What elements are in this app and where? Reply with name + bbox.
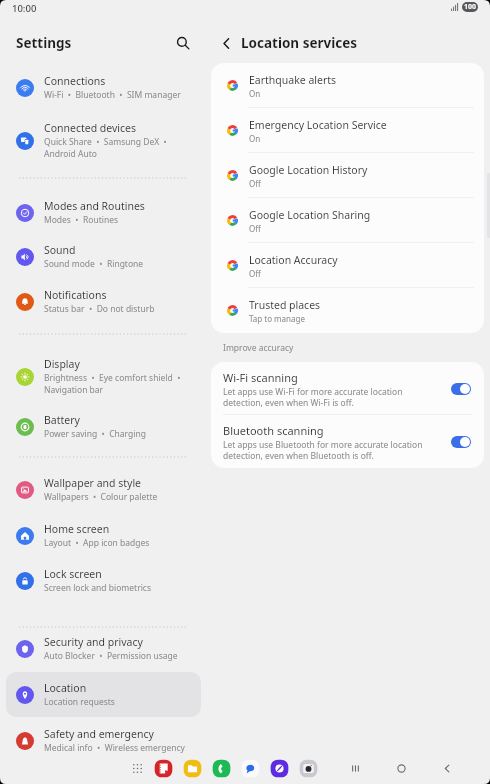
button[interactable]: Wallpaper and style <box>6 467 201 512</box>
staticText: Android Auto <box>44 148 97 160</box>
button[interactable]: Lock screen <box>6 558 201 603</box>
staticText: Location services <box>241 34 358 52</box>
staticText: Medical info • Wireless emergency <box>44 742 185 754</box>
staticText: Let apps use Wi-Fi for more accurate loc… <box>223 386 403 408</box>
staticText: Settings <box>16 34 72 52</box>
button[interactable]: Wi-Fi scanning toggle <box>451 383 471 395</box>
staticText: Earthquake alerts <box>249 73 337 87</box>
button[interactable]: Security and privacy <box>6 626 201 671</box>
button[interactable]: phone <box>212 759 231 778</box>
staticText: Let apps use Bluetooth for more accurate… <box>223 439 423 461</box>
button[interactable]: Back <box>213 30 239 56</box>
staticText: Lock screen <box>44 567 102 581</box>
button[interactable]: Back <box>438 759 456 777</box>
staticText: 100 <box>464 2 477 12</box>
button[interactable]: msg <box>241 759 260 778</box>
button[interactable]: Earthquake alerts <box>211 63 484 108</box>
staticText: Wi-Fi scanning <box>223 370 298 385</box>
staticText: Wi-Fi • Bluetooth • SIM manager <box>44 89 181 101</box>
button[interactable]: Emergency Location Service <box>211 108 484 153</box>
staticText: Off <box>249 268 261 279</box>
staticText: Layout • App icon badges <box>44 537 150 549</box>
button[interactable]: Connected devices <box>6 116 201 165</box>
button[interactable]: Sound <box>6 234 201 279</box>
button[interactable]: Battery <box>6 404 201 449</box>
staticText: On <box>249 133 261 144</box>
staticText: On <box>249 88 261 99</box>
staticText: Sound <box>44 243 76 257</box>
button[interactable]: Location Accuracy <box>211 243 484 288</box>
staticText: Modes and Routines <box>44 199 145 213</box>
staticText: Notifications <box>44 288 107 302</box>
button[interactable]: Wi-Fi scanning <box>211 362 484 415</box>
staticText: Location <box>44 681 87 695</box>
button[interactable]: camera <box>299 759 318 778</box>
button[interactable]: notes <box>154 759 173 778</box>
staticText: Wallpapers • Colour palette <box>44 491 158 503</box>
staticText: Off <box>249 178 261 189</box>
staticText: 10:00 <box>12 2 37 15</box>
staticText: Status bar • Do not disturb <box>44 303 155 315</box>
button[interactable]: Recents <box>346 759 364 777</box>
staticText: Google Location History <box>249 163 368 177</box>
button[interactable]: Connections <box>6 65 201 110</box>
staticText: Connected devices <box>44 121 137 135</box>
staticText: Bluetooth scanning <box>223 423 324 438</box>
button[interactable]: Display <box>6 352 201 401</box>
staticText: Power saving • Charging <box>44 428 146 440</box>
staticText: Safety and emergency <box>44 727 154 741</box>
staticText: Location requests <box>44 696 115 708</box>
button[interactable]: files <box>183 759 202 778</box>
staticText: Modes • Routines <box>44 214 119 226</box>
staticText: Sound mode • Ringtone <box>44 258 144 270</box>
button[interactable]: Modes and Routines <box>6 190 201 235</box>
staticText: Connections <box>44 74 106 88</box>
button[interactable]: Bluetooth scanning toggle <box>451 436 471 448</box>
staticText: Display <box>44 357 80 371</box>
staticText: Tap to manage <box>249 313 305 324</box>
staticText: Battery <box>44 413 80 427</box>
staticText: Trusted places <box>249 298 321 312</box>
staticText: Quick Share • Samsung DeX • <box>44 136 167 148</box>
staticText: Auto Blocker • Permission usage <box>44 650 178 662</box>
button[interactable]: Google Location History <box>211 153 484 198</box>
staticText: Brightness • Eye comfort shield • <box>44 372 181 384</box>
button[interactable]: Safety and emergency <box>6 718 201 763</box>
button[interactable]: Location <box>6 672 201 717</box>
button[interactable]: Apps <box>130 761 145 776</box>
button[interactable]: Trusted places <box>211 288 484 333</box>
staticText: Screen lock and biometrics <box>44 582 151 594</box>
button[interactable]: Search <box>170 30 196 56</box>
button[interactable]: Home screen <box>6 513 201 558</box>
button[interactable]: internet <box>270 759 289 778</box>
button[interactable]: Home <box>392 759 410 777</box>
button[interactable]: Bluetooth scanning <box>211 415 484 468</box>
staticText: Improve accuracy <box>223 342 294 354</box>
staticText: Navigation bar <box>44 384 104 396</box>
staticText: Wallpaper and style <box>44 476 142 490</box>
button[interactable]: Google Location Sharing <box>211 198 484 243</box>
staticText: Security and privacy <box>44 635 143 649</box>
staticText: Google Location Sharing <box>249 208 371 222</box>
staticText: Emergency Location Service <box>249 118 387 132</box>
staticText: Home screen <box>44 522 110 536</box>
staticText: Location Accuracy <box>249 253 338 267</box>
button[interactable]: Notifications <box>6 279 201 324</box>
staticText: Off <box>249 223 261 234</box>
